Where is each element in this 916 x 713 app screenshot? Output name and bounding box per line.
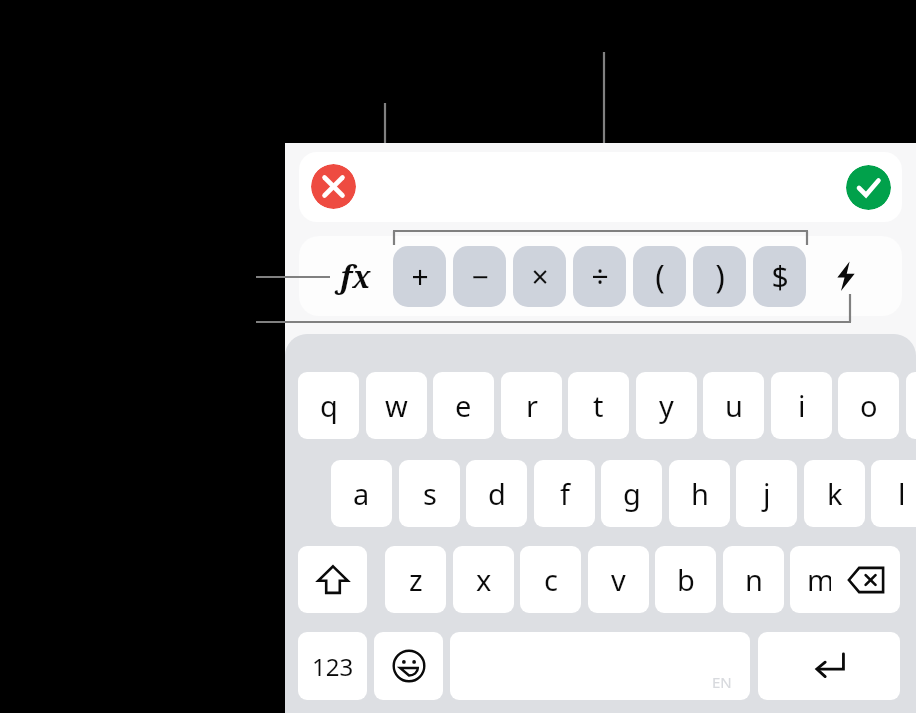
button[interactable]: Quick formulas [822, 252, 870, 300]
staticText: ( [655, 255, 665, 299]
button[interactable]: u [703, 372, 764, 439]
staticText: y [659, 386, 674, 425]
staticText: c [544, 560, 558, 599]
button[interactable]: Shift [298, 546, 367, 613]
button[interactable]: r [501, 372, 562, 439]
staticText: h [691, 474, 709, 513]
staticText: v [611, 560, 626, 599]
staticText: j [763, 474, 771, 513]
button[interactable]: Enter [758, 632, 900, 700]
staticText: f [560, 474, 570, 513]
staticText: k [827, 474, 843, 513]
staticText: n [745, 560, 763, 599]
staticText: ) [715, 255, 725, 299]
button[interactable]: 123 [298, 632, 367, 700]
button[interactable]: n [723, 546, 784, 613]
staticText: q [320, 386, 338, 425]
button[interactable]: b [655, 546, 716, 613]
button[interactable]: d [466, 460, 527, 527]
button[interactable]: c [520, 546, 581, 613]
staticText: m [807, 560, 835, 599]
button[interactable]: z [385, 546, 446, 613]
button[interactable]: + [393, 246, 446, 307]
staticText: t [593, 386, 604, 425]
staticText: ÷ [591, 256, 609, 297]
button[interactable]: e [433, 372, 494, 439]
staticText: w [385, 386, 408, 425]
button[interactable]: Backspace [831, 546, 900, 613]
button[interactable]: Cancel [311, 164, 356, 209]
button[interactable]: x [453, 546, 514, 613]
staticText: u [725, 386, 743, 425]
button[interactable]: m [790, 546, 851, 613]
staticText: o [860, 386, 878, 425]
button[interactable]: $ [753, 246, 806, 307]
button[interactable]: s [399, 460, 460, 527]
staticText: $ [771, 256, 789, 297]
button[interactable]: q [298, 372, 359, 439]
button[interactable]: t [568, 372, 629, 439]
staticText: + [411, 256, 429, 297]
staticText: − [471, 256, 489, 297]
button[interactable]: o [838, 372, 899, 439]
button[interactable]: p [906, 372, 916, 439]
staticText: g [623, 474, 641, 513]
staticText: z [409, 560, 423, 599]
staticText: l [898, 474, 906, 513]
staticText: a [353, 474, 370, 513]
staticText: EN [712, 672, 732, 692]
button[interactable]: y [636, 372, 697, 439]
staticText: r [526, 386, 538, 425]
button[interactable]: i [771, 372, 832, 439]
staticText: i [798, 386, 806, 425]
staticText: s [423, 474, 437, 513]
button[interactable]: ( [633, 246, 686, 307]
button[interactable]: ÷ [573, 246, 626, 307]
staticText: b [677, 560, 695, 599]
button[interactable]: Emoji [374, 632, 443, 700]
button[interactable]: v [588, 546, 649, 613]
button[interactable]: w [366, 372, 427, 439]
button[interactable]: ) [693, 246, 746, 307]
staticText: × [531, 256, 549, 297]
staticText: d [488, 474, 506, 513]
button[interactable]: a [331, 460, 392, 527]
button[interactable]: l [871, 460, 916, 527]
staticText: e [455, 386, 472, 425]
button[interactable]: k [804, 460, 865, 527]
button[interactable]: Functions [326, 252, 382, 300]
button[interactable]: h [669, 460, 730, 527]
button[interactable]: × [513, 246, 566, 307]
staticText: 123 [312, 650, 354, 683]
button[interactable]: − [453, 246, 506, 307]
staticText: ƒx [337, 256, 371, 297]
button[interactable]: Accept [846, 165, 891, 210]
staticText: x [476, 560, 492, 599]
button[interactable]: j [736, 460, 797, 527]
button[interactable]: f [534, 460, 595, 527]
button[interactable]: g [601, 460, 662, 527]
